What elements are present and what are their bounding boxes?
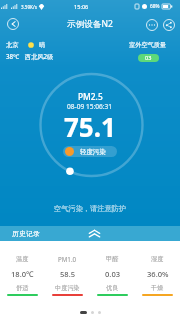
- button[interactable]: PM1.0: [45, 255, 90, 296]
- staticText: 68%: [150, 3, 160, 10]
- staticText: 58.5: [60, 269, 76, 279]
- staticText: 中度污染: [55, 284, 80, 292]
- staticText: 温度: [16, 255, 29, 263]
- button[interactable]: 温度: [0, 255, 45, 296]
- staticText: 舒适: [16, 284, 29, 292]
- staticText: 晴: [39, 41, 46, 49]
- staticText: 0.03: [105, 269, 121, 279]
- button[interactable]: 轻度污染: [65, 146, 106, 157]
- staticText: 西北风2级: [25, 52, 54, 60]
- staticText: 优良: [106, 284, 119, 292]
- button[interactable]: Back: [4, 15, 22, 33]
- button[interactable]: More options: [143, 16, 160, 33]
- staticText: 北京: [6, 41, 19, 49]
- staticText: 08-09 15:06:31: [67, 102, 113, 111]
- other: Expand history: [88, 229, 101, 238]
- staticText: 甲醛: [106, 255, 119, 263]
- staticText: 75.1: [64, 109, 116, 144]
- staticText: 室外空气质量: [129, 41, 167, 49]
- staticText: 空气污染，请注意防护: [0, 204, 180, 213]
- staticText: 干燥: [151, 284, 164, 292]
- button[interactable]: Share: [160, 16, 177, 33]
- staticText: 湿度: [151, 255, 164, 263]
- button[interactable]: 湿度: [135, 255, 180, 296]
- staticText: 历史记录: [12, 229, 40, 238]
- staticText: 18.0℃: [11, 269, 34, 279]
- staticText: 3.59K/s: [21, 4, 37, 10]
- staticText: PM1.0: [58, 255, 77, 263]
- button[interactable]: 甲醛: [90, 255, 135, 296]
- staticText: 15:06: [74, 3, 89, 11]
- button[interactable]: 历史记录: [0, 226, 180, 241]
- staticText: 38℃: [6, 52, 20, 60]
- staticText: 轻度污染: [80, 148, 106, 156]
- staticText: 示例设备N2: [67, 18, 113, 30]
- staticText: 36.0%: [147, 269, 169, 279]
- staticText: 03: [145, 54, 152, 62]
- staticText: PM2.5: [78, 91, 103, 102]
